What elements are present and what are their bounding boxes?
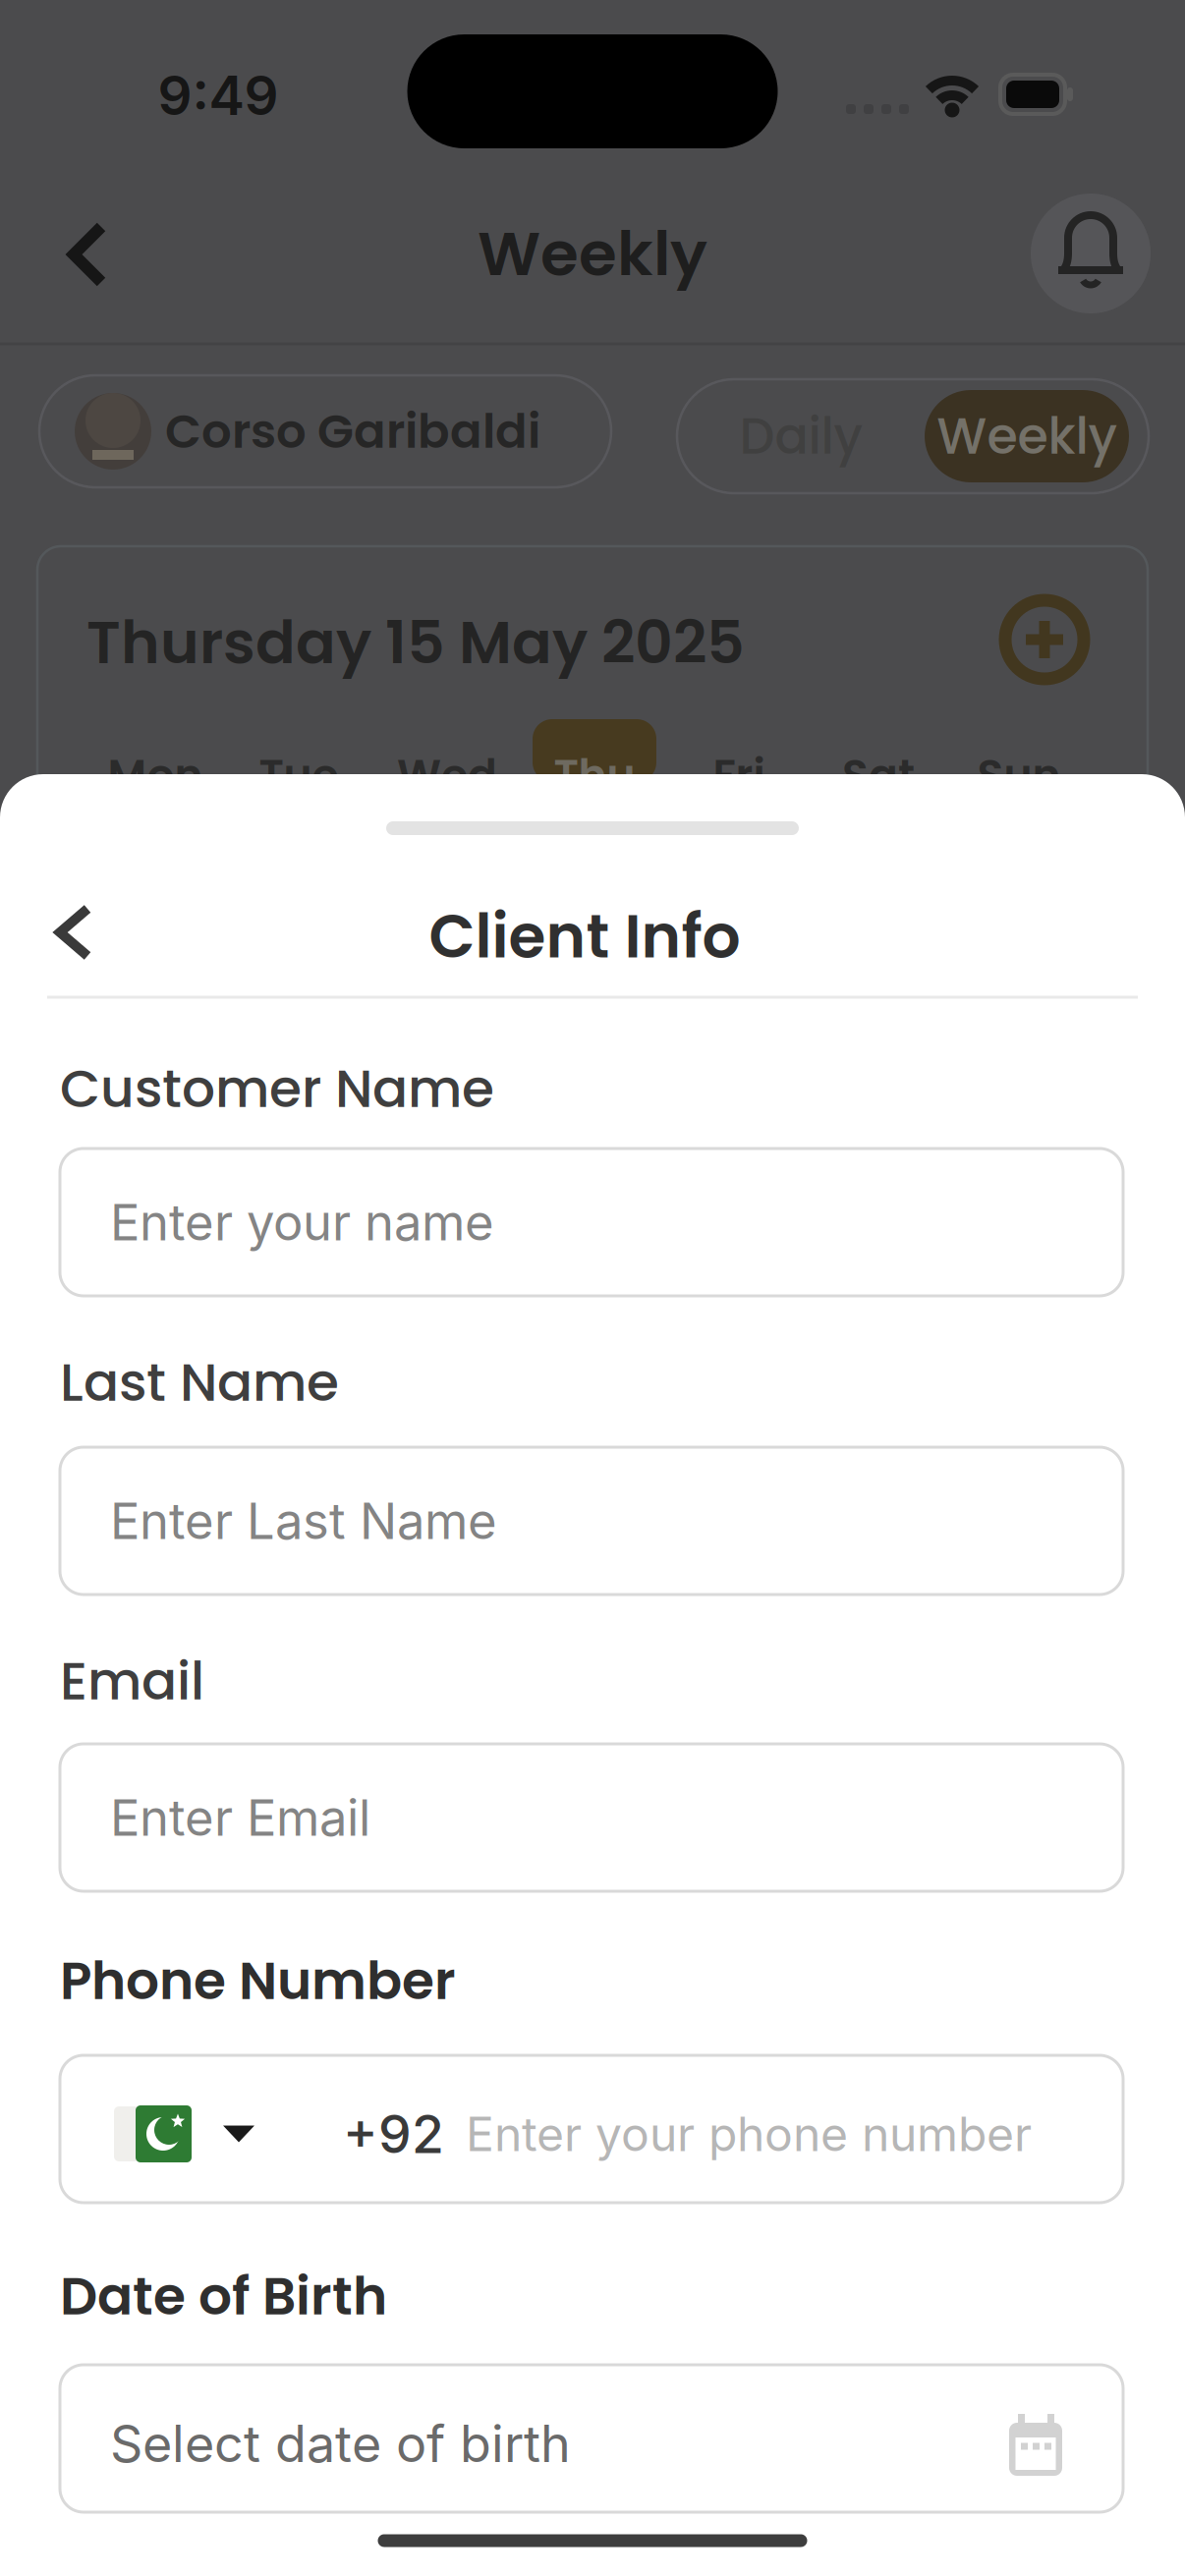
staticText: Customer Name xyxy=(60,1052,494,1125)
staticText: Email xyxy=(60,1644,204,1718)
button[interactable]: Corso Garibaldi xyxy=(39,375,611,487)
button[interactable]: Daily xyxy=(683,382,919,490)
button[interactable]: Notifications xyxy=(1031,194,1151,313)
staticText: Thu xyxy=(554,745,635,805)
staticText: Enter your phone number xyxy=(466,2105,1032,2162)
staticText: Enter your name xyxy=(110,1192,494,1252)
staticText: Corso Garibaldi xyxy=(165,398,540,464)
button[interactable]: Back xyxy=(66,223,109,286)
button[interactable]: Select date of birth xyxy=(60,2365,1123,2512)
staticText: Select date of birth xyxy=(110,2412,571,2474)
staticText: Wed xyxy=(397,745,497,805)
staticText: Fri xyxy=(713,745,765,805)
staticText: Enter Email xyxy=(110,1787,370,1848)
staticText: Weekly xyxy=(478,210,707,297)
staticText: Tue xyxy=(259,745,339,805)
staticText: Client Info xyxy=(429,894,740,979)
staticText: Mon xyxy=(108,745,203,805)
staticText: Daily xyxy=(739,401,862,471)
button[interactable]: Enter Last Name xyxy=(60,1447,1123,1595)
button[interactable]: Enter your name xyxy=(60,1148,1123,1296)
staticText: Weekly xyxy=(937,401,1117,471)
staticText: +92 xyxy=(343,2102,444,2166)
button[interactable]: Back xyxy=(54,904,93,961)
button[interactable]: Weekly xyxy=(925,390,1129,482)
staticText: 9:49 xyxy=(158,63,279,128)
staticText: Thursday 15 May 2025 xyxy=(86,601,745,684)
button[interactable]: Enter Email xyxy=(60,1744,1123,1891)
staticText: Last Name xyxy=(60,1346,339,1419)
staticText: Sun xyxy=(977,745,1061,805)
staticText: Sat xyxy=(842,745,915,805)
staticText: Enter Last Name xyxy=(110,1491,497,1551)
button[interactable]: +92 xyxy=(60,2055,1123,2203)
staticText: Phone Number xyxy=(60,1944,456,2017)
button[interactable]: Add appointment xyxy=(1005,600,1084,679)
staticText: Date of Birth xyxy=(60,2259,387,2333)
